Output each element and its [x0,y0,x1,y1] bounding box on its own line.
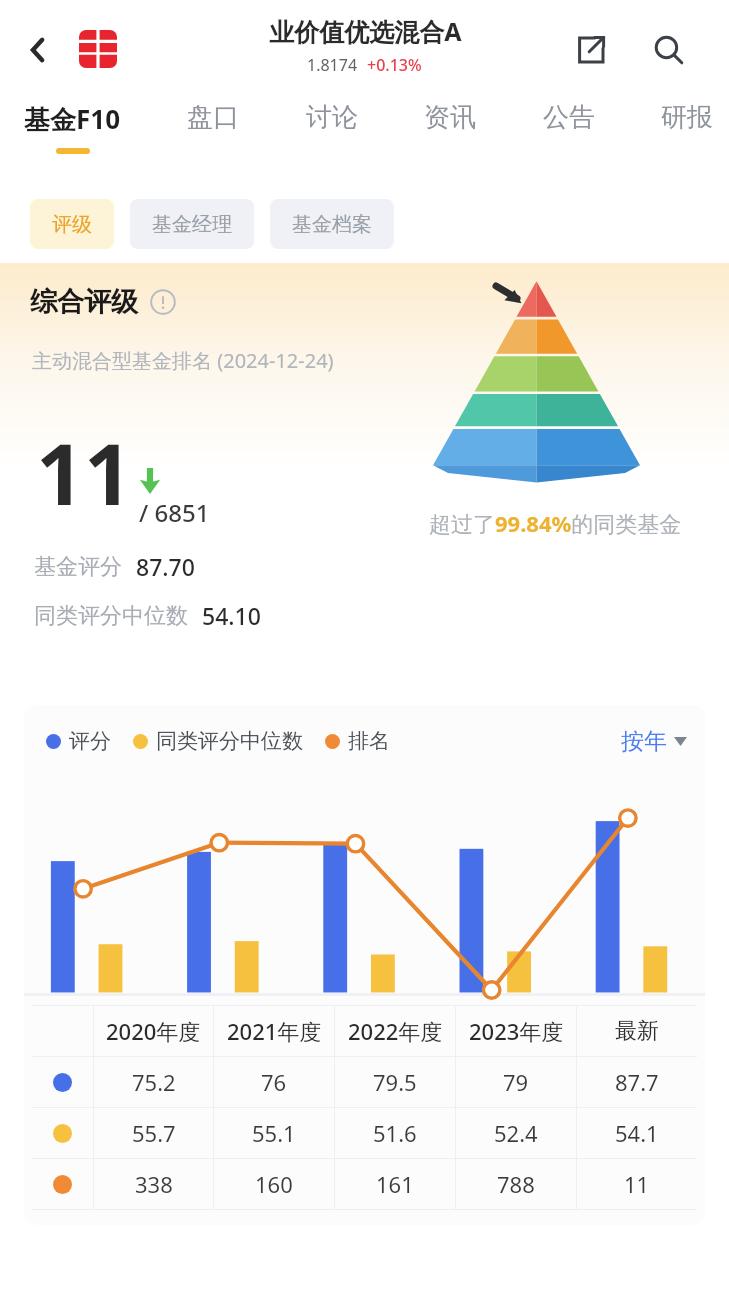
staticText: 排名 [348,728,390,754]
staticText: 75.2 [132,1067,176,1097]
staticText: 87.70 [136,551,195,582]
staticText: 综合评级 [30,285,138,319]
staticText: 160 [255,1169,293,1199]
staticText: 79 [503,1067,529,1097]
staticText: 11 [624,1169,650,1199]
button[interactable]: 综合评级 [30,285,176,319]
staticText: 基金档案 [292,212,372,237]
button[interactable]: 基金经理 [130,199,254,249]
other: Info [150,289,176,315]
staticText: 超过了99.84%的同类基金 [429,508,682,538]
staticText: 2022年度 [348,1016,443,1046]
staticText: 1.8174 [307,54,358,76]
staticText: 52.4 [494,1118,538,1148]
staticText: 基金F10 [24,101,121,137]
staticText: 54.1 [615,1118,659,1148]
staticText: 87.7 [615,1067,659,1097]
button[interactable]: 基金F10 [22,101,123,154]
staticText: 79.5 [373,1067,417,1097]
staticText: 同类评分中位数 [156,728,303,754]
button[interactable]: Search [641,22,697,78]
staticText: 资讯 [424,101,476,134]
staticText: 业价值优选混合A [269,14,462,48]
staticText: 338 [135,1169,173,1199]
button[interactable]: 资讯 [422,101,478,145]
staticText: 按年 [621,727,667,756]
staticText: 主动混合型基金排名 (2024-12-24) [32,347,334,374]
staticText: 基金评分 [34,553,122,581]
staticText: 788 [497,1169,535,1199]
staticText: 2023年度 [469,1016,564,1046]
staticText: 评级 [52,212,92,237]
button[interactable]: 公告 [541,101,597,145]
button[interactable]: 排名 [325,728,390,754]
staticText: 盘口 [187,101,239,134]
staticText: 同类评分中位数 [34,602,188,630]
staticText: 基金经理 [152,212,232,237]
staticText: 最新 [615,1017,659,1045]
staticText: 公告 [543,101,595,134]
staticText: 51.6 [373,1118,417,1148]
button[interactable]: 研报 [659,101,715,145]
button[interactable]: Share [563,22,619,78]
button[interactable]: 评级 [30,199,114,249]
staticText: / 6851 [139,496,210,529]
button[interactable]: 基金档案 [270,199,394,249]
staticText: 161 [376,1169,414,1199]
staticText: 研报 [661,101,713,134]
staticText: 11 [36,415,133,529]
button[interactable]: 按年 [621,727,687,756]
button[interactable]: 评分 [46,728,111,754]
staticText: 评分 [69,728,111,754]
button[interactable]: 盘口 [185,101,241,145]
staticText: +0.13% [367,54,422,76]
button[interactable]: Fund logo [76,27,120,71]
staticText: 2020年度 [106,1016,201,1046]
staticText: 2021年度 [227,1016,322,1046]
button[interactable]: Back [10,22,66,78]
staticText: 55.1 [252,1118,296,1148]
staticText: 76 [261,1067,287,1097]
button[interactable]: 同类评分中位数 [133,728,303,754]
staticText: 55.7 [132,1118,176,1148]
staticText: 讨论 [306,101,358,134]
staticText: 54.10 [202,600,261,631]
button[interactable]: 讨论 [304,101,360,145]
